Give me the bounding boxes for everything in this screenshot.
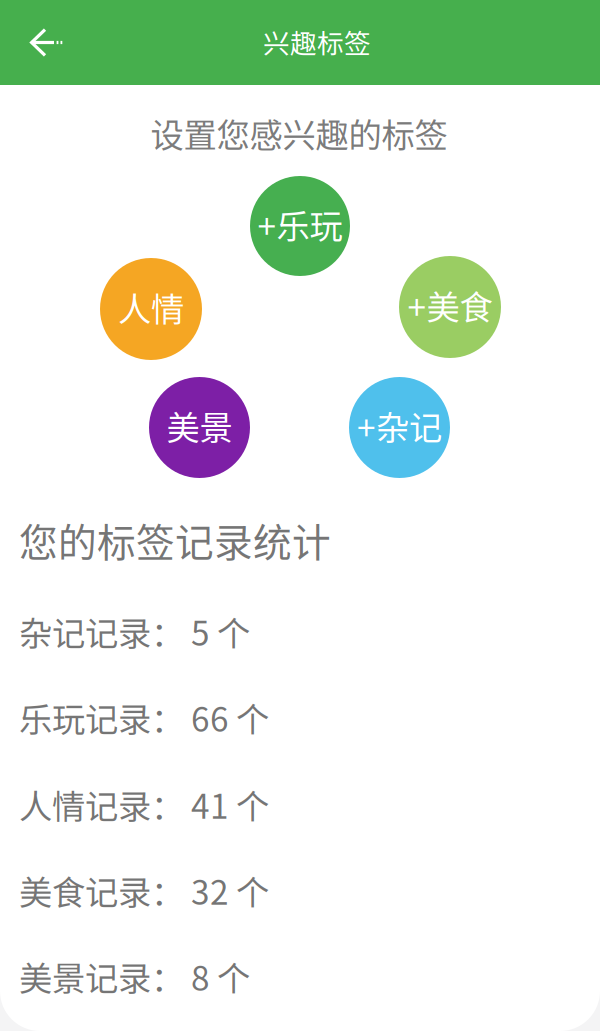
button[interactable]: +美食 [399, 256, 501, 358]
staticText: 您的标签记录统计 [19, 512, 331, 568]
staticText: 美景 [166, 401, 232, 450]
staticText: 人情记录： 41 个 [19, 780, 269, 828]
staticText: 兴趣标签 [263, 22, 371, 61]
staticText: +杂记 [357, 401, 442, 450]
button[interactable]: 美景 [149, 377, 250, 478]
staticText: 美食记录： 32 个 [19, 866, 269, 914]
staticText: 人情 [118, 283, 184, 331]
staticText: 美景记录： 8 个 [19, 952, 250, 1000]
staticText: +乐玩 [257, 200, 342, 248]
staticText: 乐玩记录： 66 个 [19, 693, 269, 741]
button[interactable]: +杂记 [349, 377, 450, 478]
staticText: +美食 [407, 281, 492, 329]
button[interactable]: +乐玩 [250, 176, 350, 276]
button[interactable]: 返回 [0, 14, 80, 71]
staticText: 设置您感兴趣的标签 [150, 109, 447, 157]
staticText: 杂记记录： 5 个 [19, 607, 250, 655]
button[interactable]: 人情 [100, 258, 202, 360]
